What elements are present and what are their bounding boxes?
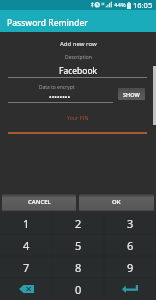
staticText: 5	[75, 238, 82, 253]
button[interactable]: 4	[0, 234, 52, 256]
staticText: Add new row	[60, 40, 97, 48]
staticText: 1	[23, 216, 30, 231]
button[interactable]: 0	[52, 278, 104, 300]
button[interactable]: 7	[0, 256, 52, 278]
staticText: 44%	[114, 1, 126, 9]
button[interactable]: 6	[104, 234, 156, 256]
button[interactable]: Enter	[104, 278, 156, 300]
staticText: Data to encrypt	[39, 84, 75, 91]
staticText: 2	[75, 216, 82, 231]
staticText: 6	[127, 238, 134, 253]
button[interactable]: 3	[104, 212, 156, 234]
button[interactable]: Backspace	[0, 278, 52, 300]
staticText: 9	[127, 260, 134, 275]
staticText: 3	[127, 216, 134, 231]
staticText: CANCEL	[28, 198, 51, 206]
button[interactable]: OK	[79, 194, 154, 211]
staticText: 4	[23, 238, 30, 253]
staticText: OK	[112, 198, 121, 206]
staticText: ••••••••	[49, 93, 71, 103]
staticText: Your PIN	[67, 114, 89, 121]
button[interactable]: 1	[0, 212, 52, 234]
button[interactable]: 2	[52, 212, 104, 234]
staticText: 0	[75, 282, 82, 297]
staticText: 7	[23, 260, 30, 275]
staticText: 8	[75, 260, 82, 275]
staticText: Password Reminder	[7, 17, 88, 29]
button[interactable]: SHOW	[118, 88, 145, 100]
button[interactable]: 8	[52, 256, 104, 278]
button[interactable]: 5	[52, 234, 104, 256]
staticText: Facebook	[59, 65, 98, 77]
staticText: SHOW	[123, 91, 140, 98]
staticText: 16:05	[133, 0, 153, 10]
button[interactable]: CANCEL	[2, 194, 76, 211]
staticText: Description	[65, 54, 92, 61]
button[interactable]: 9	[104, 256, 156, 278]
